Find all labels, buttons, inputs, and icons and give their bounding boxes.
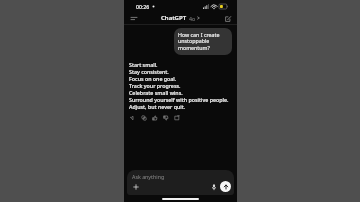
button[interactable]: New chat bbox=[222, 13, 233, 24]
staticText: Ask anything bbox=[132, 173, 165, 180]
staticText: ChatGPT bbox=[161, 14, 187, 22]
button[interactable]: ChatGPT bbox=[161, 14, 200, 22]
button[interactable]: Voice input bbox=[209, 182, 218, 191]
staticText: Focus on one goal. bbox=[129, 75, 177, 82]
button[interactable]: How can I create unstoppable momentum? bbox=[174, 28, 232, 55]
button[interactable]: Send bbox=[220, 181, 231, 192]
staticText: Celebrate small wins. bbox=[129, 89, 183, 96]
button[interactable]: Regenerate bbox=[173, 114, 180, 121]
staticText: Start small. bbox=[129, 61, 158, 68]
staticText: Surround yourself with positive people. bbox=[129, 96, 229, 103]
staticText: 00:26 bbox=[136, 3, 150, 10]
button[interactable]: Copy bbox=[140, 114, 147, 121]
button[interactable]: Open sidebar bbox=[128, 13, 139, 24]
button[interactable]: Good response bbox=[151, 114, 158, 121]
button[interactable]: Attach bbox=[131, 182, 140, 191]
staticText: How can I create unstoppable momentum? bbox=[178, 31, 228, 52]
staticText: Adjust, but never quit. bbox=[129, 103, 186, 110]
staticText: Stay consistent. bbox=[129, 68, 169, 75]
button[interactable]: Read aloud bbox=[129, 114, 136, 121]
button[interactable]: Bad response bbox=[162, 114, 169, 121]
staticText: 4o bbox=[189, 15, 196, 22]
staticText: Track your progress. bbox=[129, 82, 181, 89]
